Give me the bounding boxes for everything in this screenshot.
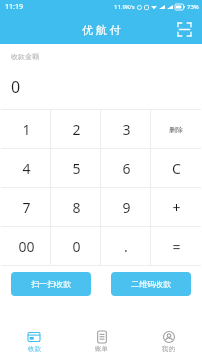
staticText: 收款金额 [11,52,39,61]
staticText: 0 [72,237,81,256]
button[interactable]: 6 [101,149,151,187]
staticText: 优 航 付 [82,22,121,37]
button[interactable]: . [101,227,151,265]
staticText: 6 [122,159,131,178]
staticText: 扫一扫收款 [31,279,71,289]
button[interactable]: 账单 [68,327,135,357]
button[interactable]: + [151,188,201,226]
staticText: 收款 [28,345,41,353]
button[interactable]: 8 [51,188,101,226]
staticText: 9 [122,198,131,217]
staticText: 删除 [169,125,183,134]
staticText: + [172,198,181,217]
staticText: 8 [72,198,81,217]
staticText: 11:19 [5,2,23,12]
button[interactable]: 我的 [135,327,202,357]
button[interactable]: C [151,149,201,187]
button[interactable]: 2 [51,110,101,148]
staticText: 11.9K/s [114,3,135,11]
staticText: 0 [11,76,21,98]
button[interactable]: 9 [101,188,151,226]
button[interactable]: 3 [101,110,151,148]
button[interactable]: = [151,227,201,265]
button[interactable]: 删除 [151,110,201,148]
staticText: . [124,237,128,256]
staticText: 5 [72,159,81,178]
button[interactable]: 0 [51,227,101,265]
staticText: 我的 [162,345,175,353]
staticText: 7 [22,198,31,217]
staticText: 2 [72,120,81,139]
staticText: 00 [18,237,35,256]
button[interactable]: Scan QR code [173,18,195,40]
button[interactable]: 扫一扫收款 [11,272,91,296]
staticText: 4 [22,159,31,178]
button[interactable]: 收款 [0,327,68,357]
button[interactable]: 00 [1,227,51,265]
staticText: 二维码收款 [131,279,171,289]
button[interactable]: 5 [51,149,101,187]
staticText: 3 [122,120,131,139]
button[interactable]: 1 [1,110,51,148]
staticText: = [172,237,181,256]
staticText: 账单 [95,345,108,353]
staticText: C [172,159,181,178]
button[interactable]: 7 [1,188,51,226]
staticText: 73% [187,3,199,11]
button[interactable]: 二维码收款 [111,272,191,296]
button[interactable]: 4 [1,149,51,187]
staticText: 1 [22,120,31,139]
